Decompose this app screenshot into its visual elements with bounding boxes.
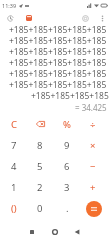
staticText: = 34.425 — [75, 102, 107, 112]
staticText: 6 — [64, 160, 70, 173]
button[interactable]: Home — [46, 224, 64, 239]
button[interactable]: Recents — [23, 224, 41, 239]
staticText: +185+185+185+185+185 — [9, 46, 107, 57]
staticText: +185+185+185+185+185 — [9, 79, 107, 90]
staticText: % — [63, 118, 71, 131]
button[interactable]: 6 — [55, 156, 79, 176]
button[interactable]: Equals — [86, 201, 102, 217]
staticText: 11:39 — [2, 2, 17, 9]
staticText: ÷ — [90, 118, 96, 131]
staticText: +185+185+185+185+185 — [9, 24, 107, 35]
staticText: +185+185+185+185+185 — [9, 57, 107, 68]
button[interactable]: 0 — [28, 198, 52, 218]
staticText: 5 — [37, 160, 43, 173]
button[interactable]: × — [81, 135, 105, 155]
staticText: − — [90, 160, 96, 173]
button[interactable]: 7 — [2, 135, 26, 155]
button[interactable]: 5 — [28, 156, 52, 176]
staticText: 8 — [37, 139, 43, 152]
staticText: 2 — [37, 181, 43, 194]
staticText: 0 — [37, 202, 43, 215]
button[interactable]: Back — [68, 224, 86, 239]
button[interactable]: Backspace — [28, 114, 52, 134]
button[interactable]: Themes — [77, 10, 93, 26]
button[interactable]: 9 — [55, 135, 79, 155]
button[interactable]: 4 — [2, 156, 26, 176]
staticText: 7 — [11, 139, 17, 152]
staticText: () — [11, 202, 17, 215]
staticText: 3 — [64, 181, 70, 194]
staticText: 4 — [11, 160, 17, 173]
staticText: + — [90, 181, 96, 194]
button[interactable]: . — [55, 198, 79, 218]
button[interactable]: History — [2, 10, 18, 26]
other: Backspace — [30, 114, 50, 134]
staticText: +185+185+185+185+185 — [9, 68, 107, 79]
staticText: C — [11, 118, 18, 131]
button[interactable]: % — [55, 114, 79, 134]
button[interactable]: More options — [95, 10, 109, 26]
button[interactable]: 8 — [28, 135, 52, 155]
staticText: +185+185+185+185+185 — [9, 35, 107, 46]
button[interactable]: + — [81, 177, 105, 197]
staticText: +185+185+185+185 — [31, 90, 109, 101]
button[interactable]: 2 — [28, 177, 52, 197]
button[interactable]: C — [2, 114, 26, 134]
button[interactable]: Calculator mode — [21, 10, 37, 26]
button[interactable]: () — [2, 198, 26, 218]
staticText: × — [90, 139, 96, 152]
button[interactable]: − — [81, 156, 105, 176]
staticText: . — [66, 202, 69, 215]
staticText: 9 — [64, 139, 70, 152]
button[interactable]: ÷ — [81, 114, 105, 134]
button[interactable]: 3 — [55, 177, 79, 197]
button[interactable]: 1 — [2, 177, 26, 197]
staticText: 1 — [11, 181, 17, 194]
